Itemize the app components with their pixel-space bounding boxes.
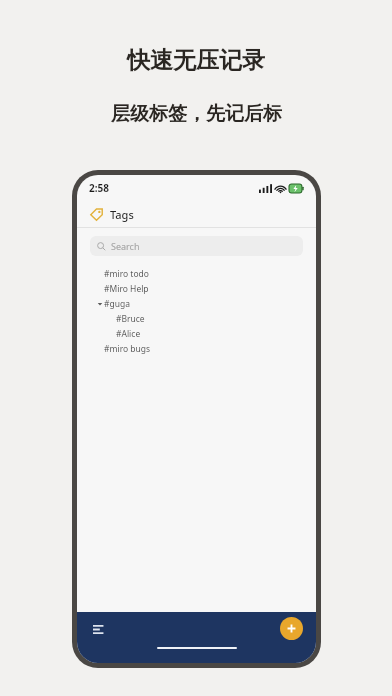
staticText: #Alice — [116, 328, 141, 340]
staticText: Tags — [110, 207, 134, 222]
button[interactable]: Menu — [87, 618, 109, 640]
button[interactable]: #Bruce — [77, 311, 316, 326]
button[interactable]: #miro todo — [77, 266, 316, 281]
staticText: #miro bugs — [104, 343, 151, 355]
button[interactable]: Tags — [77, 201, 316, 227]
staticText: #guga — [104, 298, 130, 310]
button[interactable]: #Alice — [77, 326, 316, 341]
button[interactable]: Add — [280, 617, 303, 640]
staticText: #miro todo — [104, 268, 149, 280]
button[interactable]: #miro bugs — [77, 341, 316, 356]
button[interactable]: #guga — [77, 296, 316, 311]
staticText: #Bruce — [116, 313, 145, 325]
staticText: 快速无压记录 — [127, 46, 265, 75]
staticText: 层级标签，先记后标 — [111, 102, 282, 126]
other: Tags — [90, 208, 103, 221]
staticText: 2:58 — [89, 181, 109, 195]
staticText: #Miro Help — [104, 283, 149, 295]
staticText: Search — [111, 240, 140, 252]
button[interactable]: #Miro Help — [77, 281, 316, 296]
button[interactable]: Search — [90, 236, 303, 256]
